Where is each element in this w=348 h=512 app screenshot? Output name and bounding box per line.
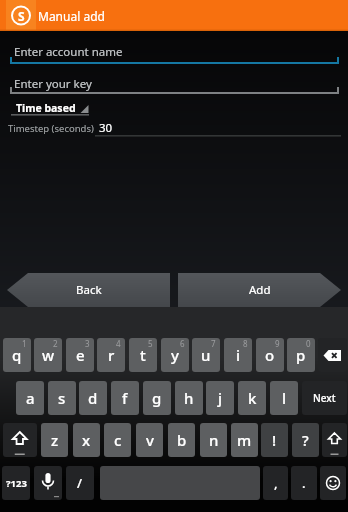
- staticText: 4: [116, 338, 121, 349]
- button[interactable]: v: [136, 423, 163, 457]
- staticText: b: [177, 430, 187, 450]
- staticText: Enter your key: [14, 76, 92, 92]
- button[interactable]: [3, 423, 37, 457]
- staticText: s: [58, 388, 66, 408]
- staticText: l: [282, 388, 287, 408]
- staticText: q: [12, 345, 22, 365]
- staticText: e: [76, 345, 85, 365]
- staticText: f: [122, 388, 128, 408]
- staticText: i: [236, 345, 241, 365]
- staticText: c: [114, 430, 122, 450]
- button[interactable]: Enter account name: [8, 38, 342, 68]
- button[interactable]: 30: [95, 118, 342, 138]
- button[interactable]: t: [129, 338, 157, 372]
- staticText: 8: [243, 338, 248, 349]
- staticText: ?123: [6, 477, 27, 490]
- staticText: ,: [274, 474, 278, 492]
- button[interactable]: [318, 338, 347, 372]
- staticText: w: [42, 345, 55, 365]
- button[interactable]: a: [16, 381, 44, 415]
- button[interactable]: q: [3, 338, 31, 372]
- staticText: v: [146, 430, 154, 450]
- button[interactable]: ,: [263, 466, 288, 500]
- button[interactable]: Time based: [8, 98, 92, 118]
- button[interactable]: !: [261, 423, 288, 457]
- staticText: 6: [180, 338, 185, 349]
- staticText: Enter account name: [14, 44, 123, 60]
- button[interactable]: w: [34, 338, 62, 372]
- staticText: z: [51, 430, 59, 450]
- staticText: 1: [22, 338, 27, 349]
- staticText: ?: [302, 430, 309, 450]
- staticText: 0: [306, 338, 311, 349]
- button[interactable]: .: [291, 466, 317, 500]
- staticText: p: [296, 345, 306, 365]
- staticText: 2: [53, 338, 58, 349]
- button[interactable]: j: [206, 381, 234, 415]
- button[interactable]: k: [238, 381, 266, 415]
- button[interactable]: d: [79, 381, 107, 415]
- staticText: Timestep (seconds): [8, 122, 94, 135]
- staticText: Add: [249, 282, 271, 298]
- staticText: y: [171, 345, 179, 365]
- staticText: .: [302, 474, 306, 492]
- staticText: k: [248, 388, 257, 408]
- staticText: g: [152, 388, 162, 408]
- staticText: Back: [76, 282, 102, 298]
- button[interactable]: ?123: [2, 466, 30, 500]
- button[interactable]: s: [48, 381, 76, 415]
- staticText: 3: [85, 338, 90, 349]
- button[interactable]: b: [168, 423, 195, 457]
- button[interactable]: Enter your key: [8, 70, 342, 100]
- button[interactable]: Add: [178, 273, 341, 307]
- button[interactable]: [320, 466, 346, 500]
- staticText: h: [184, 388, 194, 408]
- staticText: x: [82, 430, 91, 450]
- staticText: a: [26, 388, 35, 408]
- button[interactable]: z: [41, 423, 68, 457]
- button[interactable]: l: [270, 381, 298, 415]
- button[interactable]: [322, 423, 347, 457]
- staticText: 9: [275, 338, 280, 349]
- staticText: r: [108, 345, 115, 365]
- button[interactable]: o: [256, 338, 284, 372]
- button[interactable]: y: [161, 338, 189, 372]
- staticText: /: [77, 474, 83, 492]
- button[interactable]: n: [200, 423, 227, 457]
- button[interactable]: x: [73, 423, 100, 457]
- staticText: 5: [148, 338, 153, 349]
- staticText: t: [140, 345, 146, 365]
- button[interactable]: c: [104, 423, 131, 457]
- button[interactable]: r: [97, 338, 125, 372]
- staticText: 30: [99, 120, 113, 136]
- staticText: n: [209, 430, 219, 450]
- button[interactable]: p: [287, 338, 315, 372]
- button[interactable]: g: [143, 381, 171, 415]
- staticText: Manual add: [38, 8, 105, 24]
- button[interactable]: e: [66, 338, 94, 372]
- staticText: 7: [211, 338, 216, 349]
- staticText: d: [88, 388, 98, 408]
- button[interactable]: i: [224, 338, 252, 372]
- button[interactable]: m: [231, 423, 258, 457]
- button[interactable]: ?: [292, 423, 319, 457]
- button[interactable]: [34, 466, 62, 500]
- staticText: m: [237, 430, 252, 450]
- button[interactable]: f: [111, 381, 139, 415]
- staticText: j: [218, 388, 223, 408]
- button[interactable]: u: [192, 338, 220, 372]
- button[interactable]: S: [0, 0, 348, 31]
- button[interactable]: h: [175, 381, 203, 415]
- staticText: S: [18, 8, 25, 24]
- staticText: Next: [313, 391, 336, 405]
- staticText: o: [265, 345, 275, 365]
- button[interactable]: Back: [7, 273, 170, 307]
- button[interactable]: Next: [302, 381, 347, 415]
- staticText: u: [201, 345, 211, 365]
- staticText: Time based: [16, 101, 76, 115]
- staticText: !: [272, 430, 277, 450]
- button[interactable]: /: [66, 466, 94, 500]
